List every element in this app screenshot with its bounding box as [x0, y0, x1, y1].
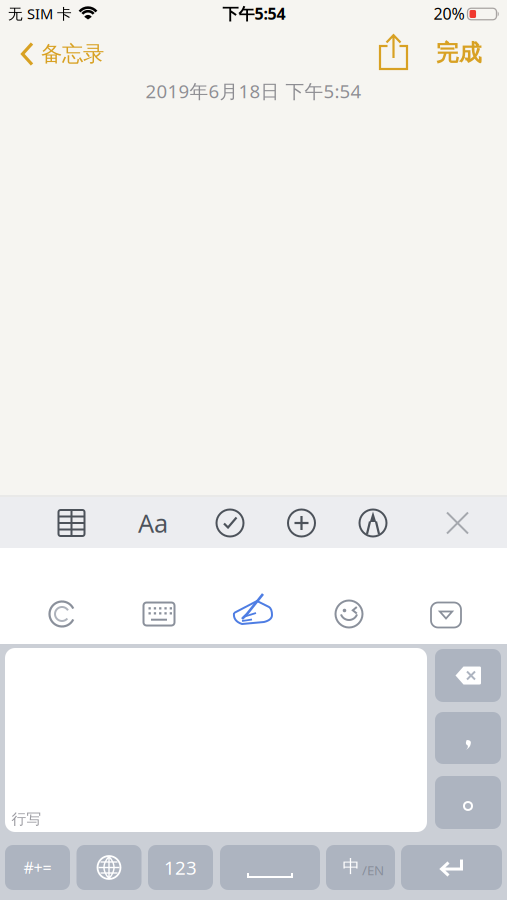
button[interactable]: 表情符号 — [329, 594, 369, 634]
button[interactable]: 换行 — [401, 845, 502, 890]
button[interactable]: 备忘录 — [20, 41, 104, 67]
button[interactable]: 下一个键盘 — [76, 845, 141, 890]
button[interactable]: 检查清单 — [210, 503, 250, 543]
button[interactable]: 键盘 — [139, 594, 179, 634]
button[interactable]: 手写区 — [5, 648, 427, 832]
button[interactable]: 123 — [148, 845, 213, 890]
button[interactable]: 中 — [326, 845, 395, 890]
staticText: Aa — [138, 506, 168, 540]
button[interactable]: 完成 — [436, 39, 482, 67]
button[interactable]: 标记 — [353, 503, 393, 543]
button[interactable]: 分享 — [379, 34, 408, 70]
staticText: /EN — [362, 861, 384, 879]
staticText: 完成 — [436, 39, 482, 67]
button[interactable]: 格式 — [130, 503, 176, 543]
staticText: 备忘录 — [41, 41, 104, 67]
staticText: 2019年6月18日 下午5:54 — [145, 79, 361, 103]
button[interactable]: 插入表格 — [51, 503, 91, 543]
staticText: 行写 — [11, 810, 41, 828]
button[interactable]: 手写 — [230, 592, 276, 636]
button[interactable]: #+= — [5, 845, 70, 890]
button[interactable]: 删除 — [435, 649, 501, 702]
button[interactable]: 仓颉 — [42, 594, 82, 634]
staticText: #+= — [23, 857, 51, 878]
button[interactable]: 空格 — [220, 845, 320, 890]
staticText: 中 — [342, 856, 359, 877]
staticText: 下午5:54 — [222, 3, 285, 24]
button[interactable]: 关闭 — [437, 503, 477, 543]
button[interactable] — [435, 776, 501, 829]
staticText: 123 — [164, 855, 197, 880]
button[interactable]: 收起键盘 — [426, 595, 466, 635]
button[interactable]: 添加 — [281, 503, 321, 543]
button[interactable] — [435, 712, 501, 764]
staticText: 20% — [433, 3, 464, 24]
staticText: 无 SIM 卡 — [8, 4, 72, 23]
